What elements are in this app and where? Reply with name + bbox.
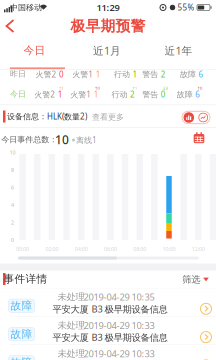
staticText: 11:29 bbox=[96, 1, 119, 14]
staticText: ↑0 bbox=[197, 86, 202, 91]
staticText: 2019-04-29 10:35 bbox=[83, 291, 154, 303]
staticText: 故障 bbox=[10, 299, 32, 312]
staticText: 近1月 bbox=[93, 43, 121, 58]
staticText: 55% bbox=[177, 2, 194, 13]
staticText: 0 bbox=[59, 69, 64, 80]
staticText: 火警2 bbox=[34, 89, 55, 100]
staticText: 今日 bbox=[10, 89, 26, 99]
staticText: 06:00 bbox=[104, 245, 117, 253]
staticText: 今日 bbox=[23, 44, 45, 57]
staticText: 6 bbox=[195, 89, 200, 100]
staticText: 故障 bbox=[10, 356, 32, 360]
button[interactable]: 今日 bbox=[19, 40, 49, 61]
staticText: ↑1 bbox=[132, 86, 137, 91]
staticText: 火警1 bbox=[70, 89, 91, 100]
staticText: 2 bbox=[11, 219, 14, 226]
staticText: 行动 bbox=[114, 69, 130, 79]
staticText: 近1年 bbox=[164, 43, 192, 58]
staticText: 故障 bbox=[177, 90, 193, 99]
staticText: ↑1 bbox=[58, 86, 63, 91]
staticText: 平安大厦 B3 极早期设备信息 bbox=[52, 303, 167, 315]
staticText: 警告 bbox=[142, 69, 158, 79]
staticText: 1 bbox=[96, 69, 101, 80]
button[interactable]: 选择日期 bbox=[194, 132, 204, 143]
staticText: ↑0 bbox=[94, 86, 99, 91]
staticText: 事件详情 bbox=[3, 272, 47, 285]
staticText: 2019-04-29 10:33 bbox=[83, 319, 154, 331]
button[interactable]: 筛选 bbox=[179, 271, 212, 288]
staticText: 04:00 bbox=[75, 245, 88, 253]
staticText: 平安大厦 B3 极早期设备信息 bbox=[52, 331, 167, 343]
staticText: 今日事件总数： bbox=[1, 135, 57, 144]
button[interactable]: 故障 bbox=[0, 317, 216, 345]
staticText: 警告 bbox=[142, 90, 158, 99]
staticText: 中国移动 bbox=[10, 3, 42, 12]
staticText: HLK(数量2) bbox=[47, 111, 87, 122]
staticText: 0 bbox=[11, 236, 14, 244]
staticText: 0 bbox=[161, 89, 166, 100]
button[interactable]: 近1月 bbox=[89, 39, 125, 62]
button[interactable]: 故障 bbox=[0, 345, 216, 360]
staticText: 火警1 bbox=[72, 69, 93, 80]
staticText: 10 bbox=[55, 131, 69, 147]
staticText: 2 bbox=[130, 89, 135, 100]
staticText: 未处理 bbox=[57, 291, 84, 303]
staticText: 故障 bbox=[10, 327, 32, 341]
button[interactable]: 返回 bbox=[0, 14, 20, 38]
button[interactable]: 查看更多 bbox=[90, 110, 126, 124]
staticText: 行动 bbox=[111, 90, 127, 99]
staticText: 8 bbox=[11, 166, 14, 174]
staticText: 未处理 bbox=[57, 320, 84, 331]
staticText: 6 bbox=[11, 184, 14, 191]
staticText: 12:00 bbox=[192, 245, 205, 253]
staticText: 离线1 bbox=[76, 135, 97, 145]
staticText: 设备信息： bbox=[7, 112, 47, 121]
staticText: 10:00 bbox=[162, 245, 175, 253]
staticText: 昨日 bbox=[10, 69, 26, 79]
staticText: 1 bbox=[94, 89, 99, 100]
staticText: 极早期预警 bbox=[70, 17, 145, 35]
staticText: 6 bbox=[198, 69, 203, 80]
staticText: ↓3 bbox=[162, 86, 167, 91]
button[interactable]: 近1年 bbox=[160, 39, 196, 62]
staticText: 查看更多 bbox=[92, 112, 124, 122]
staticText: 08:00 bbox=[133, 245, 146, 253]
staticText: 未处理 bbox=[57, 348, 84, 359]
staticText: 4 bbox=[11, 201, 14, 209]
staticText: 02:00 bbox=[45, 245, 58, 253]
button[interactable]: 切换图表类型 bbox=[182, 111, 210, 124]
staticText: 10 bbox=[9, 149, 15, 156]
staticText: 故障 bbox=[180, 69, 196, 79]
staticText: 火警2 bbox=[35, 69, 56, 80]
staticText: 1 bbox=[132, 69, 137, 80]
staticText: 00:00 bbox=[16, 245, 29, 253]
staticText: 2 bbox=[161, 69, 166, 80]
button[interactable]: 故障 bbox=[0, 288, 216, 317]
staticText: 筛选 bbox=[182, 274, 200, 285]
staticText: 1 bbox=[58, 89, 63, 100]
staticText: 2019-04-29 10:33 bbox=[83, 347, 154, 360]
